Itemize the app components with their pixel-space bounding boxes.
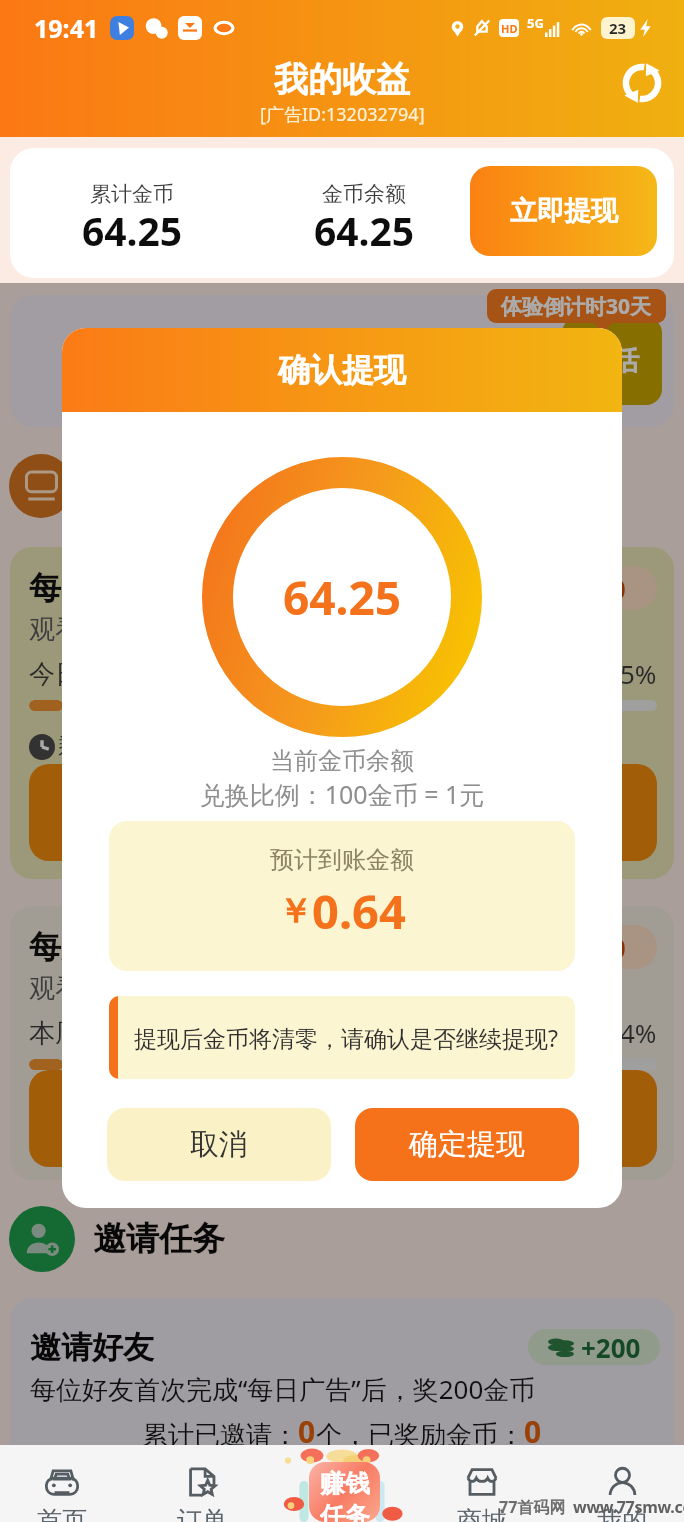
staticText: 个 [316,1419,342,1452]
staticText: www.77smw.com [573,1496,684,1518]
staticText: 64.25 [292,204,436,257]
staticText: 观看广告赚金币 [29,972,211,1005]
button[interactable]: 取消 [107,1108,331,1181]
button[interactable]: 激活 [10,295,674,427]
button[interactable]: 商城 [422,1455,542,1522]
staticText: [广告ID:132032794] [260,102,425,127]
button[interactable]: 确定提现 [355,1108,579,1181]
staticText: 金币余额 [292,181,436,207]
staticText: 立即提现 [510,194,618,228]
staticText: 23 [609,18,627,38]
staticText: 每周广告 [29,927,157,967]
staticText: HD [501,21,518,36]
button[interactable]: 观看广告 [29,764,657,861]
button[interactable]: 刷新 [616,57,668,109]
staticText: 激活 [585,344,639,378]
staticText: 累计金币 [60,181,204,207]
staticText: 0 [524,1411,542,1452]
staticText: 取消 [190,1126,248,1163]
staticText: 邀请任务 [93,1218,225,1260]
button[interactable]: 观看广告 [29,1070,657,1167]
staticText: 今日已完成 0/20 [29,655,221,691]
staticText: 0.64 [312,879,406,943]
staticText: 订单 [177,1505,227,1522]
staticText: 每位好友首次完成“每日广告”后，奖200金币 [30,1371,536,1407]
staticText: 剩余次数充足 [58,731,208,762]
button[interactable]: 每日广告 [10,547,674,879]
staticText: 我的 [597,1505,647,1522]
staticText: 邀请好友 [30,1328,154,1367]
button[interactable]: 邀请好友 [10,1298,674,1478]
staticText: +200 [581,1330,641,1365]
staticText: 64.25 [60,204,204,257]
staticText: ，已奖励金币： [342,1419,524,1452]
button[interactable]: 每周广告 [10,906,674,1180]
staticText: 预计到账金额 [270,845,414,875]
staticText: 19:41 [34,11,99,45]
staticText: 观看广告 [283,1100,403,1138]
staticText: 观看广告赚金币 [29,613,211,646]
button[interactable]: 立即提现 [470,166,657,256]
staticText: +0 [596,571,626,606]
staticText: 任务 [320,1501,370,1522]
staticText: 首页 [37,1505,87,1522]
staticText: +0 [596,930,626,965]
staticText: 本周已完成 0/50 [29,1014,221,1050]
staticText: 4% [620,1015,657,1050]
staticText: 观看广告 [283,794,403,832]
staticText: 当前金币余额 [62,746,622,776]
button[interactable]: 我的 [562,1455,682,1522]
staticText: 0 [298,1411,316,1452]
staticText: 兑换比例：100金币 = 1元 [62,777,622,811]
staticText: 64.25 [283,566,402,629]
button[interactable]: 赚钱任务 [282,1440,402,1522]
staticText: 商城 [457,1505,507,1522]
staticText: ￥ [278,890,312,933]
staticText: 我的收益 [274,58,410,101]
staticText: 体验倒计时30天 [501,292,652,321]
staticText: 确认提现 [278,350,406,390]
staticText: 每日广告 [29,568,157,608]
staticText: 5% [620,656,657,691]
button[interactable]: 订单 [142,1455,262,1522]
staticText: 77首码网 [499,1496,566,1518]
button[interactable]: 首页 [2,1455,122,1522]
staticText: 赚钱 [320,1468,370,1499]
staticText: 5G [527,14,544,32]
staticText: 确定提现 [409,1126,525,1163]
staticText: 累计已邀请： [142,1419,298,1452]
staticText: 提现后金币将清零，请确认是否继续提现? [134,1022,558,1053]
